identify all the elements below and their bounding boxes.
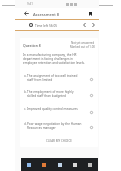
button[interactable]: App 2 (40, 161, 48, 169)
staticText: Time left 56:05 (35, 24, 58, 28)
button[interactable]: a. (20, 73, 98, 88)
button[interactable]: Bookmark (85, 8, 95, 19)
staticText: c. (24, 107, 27, 111)
button[interactable]: Previous question (80, 20, 89, 30)
staticText: b. (24, 90, 27, 94)
button[interactable]: CLEAR MY CHOICE (20, 136, 98, 145)
staticText: In a manufacturing company, the HR depar… (23, 53, 87, 65)
staticText: The employment of more highly skilled st… (27, 90, 82, 98)
staticText: The assignment of too well trained staff… (27, 74, 82, 82)
staticText: 9:41 (27, 2, 33, 6)
button[interactable]: b. (20, 89, 98, 104)
staticText: d. (24, 122, 27, 126)
staticText: Assessment 8 (33, 12, 60, 17)
button[interactable]: App 3 (56, 161, 64, 169)
staticText: Improved quality control measures (27, 107, 82, 111)
button[interactable]: Next question (89, 20, 98, 30)
button[interactable]: c. (20, 106, 98, 121)
button[interactable]: App 4 (71, 161, 79, 169)
staticText: Not yet answered (71, 41, 95, 45)
button[interactable]: d. (20, 121, 98, 136)
staticText: Question 8 (23, 43, 41, 48)
button[interactable]: App 1 (25, 161, 33, 169)
staticText: CLEAR MY CHOICE (46, 139, 72, 143)
staticText: a. (24, 74, 27, 78)
button[interactable]: Back (21, 8, 31, 19)
button[interactable]: App 5 (86, 161, 94, 169)
staticText: Poor wage negotiation by the Human Resou… (27, 122, 82, 130)
staticText: Marked out of 1.00 (70, 45, 95, 49)
